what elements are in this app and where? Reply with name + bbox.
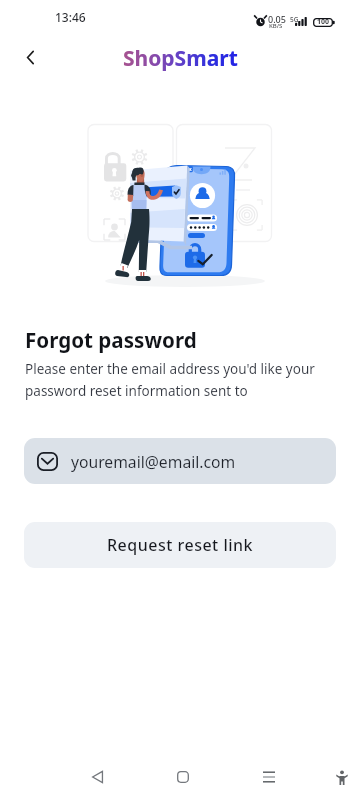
staticText: 100 [317,17,330,27]
button[interactable]: Back [79,759,115,795]
button[interactable]: Home [165,759,201,795]
staticText: 13:46 [55,9,86,25]
button[interactable]: Recent apps [251,759,287,795]
button[interactable]: youremail@email.com [24,438,336,484]
staticText: Request reset link [107,534,253,556]
button[interactable]: Back [11,38,49,76]
button[interactable]: Accessibility [324,759,360,795]
staticText: 0.05 [268,13,286,25]
staticText: Please enter the email address you'd lik… [25,360,332,400]
staticText: Forgot password [25,326,197,354]
staticText: ShopSmart [123,44,238,73]
staticText: KB/S [269,22,283,30]
staticText: youremail@email.com [71,451,236,472]
button[interactable]: Request reset link [24,522,336,568]
staticText: 5G [290,15,299,24]
